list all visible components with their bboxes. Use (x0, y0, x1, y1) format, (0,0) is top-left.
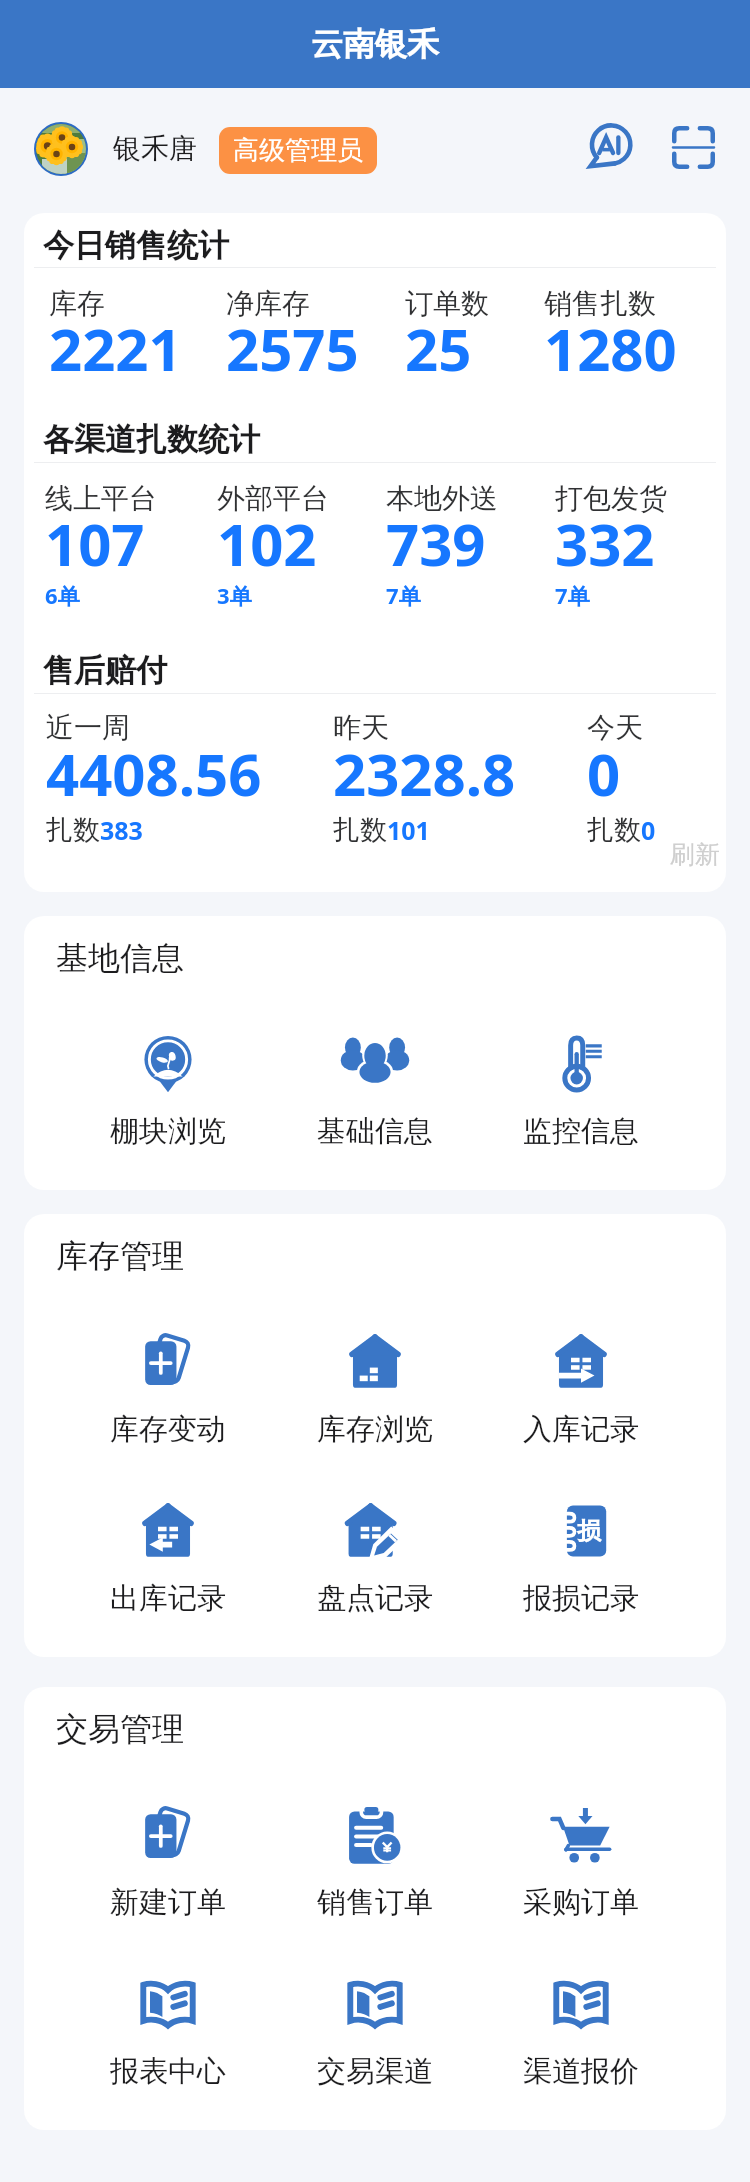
staticText: 739 (386, 504, 486, 583)
staticText: 库存 (49, 286, 105, 321)
staticText: 损 (577, 1516, 601, 1546)
staticText: 线上平台 (45, 481, 157, 516)
staticText: 基地信息 (56, 938, 184, 978)
staticText: 4408.56 (46, 734, 262, 813)
button[interactable]: 高级管理员 (219, 127, 377, 174)
staticText: 今天 (587, 710, 643, 745)
button[interactable]: AI assistant (583, 121, 635, 173)
staticText: 383 (100, 813, 143, 847)
staticText: 扎数 (46, 813, 100, 847)
staticText: 2221 (49, 309, 182, 388)
staticText: 扎数 (587, 813, 641, 847)
staticText: 净库存 (226, 286, 310, 321)
staticText: 订单数 (405, 286, 489, 321)
staticText: 6单 (45, 580, 80, 610)
staticText: 外部平台 (217, 481, 329, 516)
staticText: 交易管理 (56, 1709, 184, 1749)
button[interactable]: 刷新 (664, 833, 726, 876)
button[interactable]: 损 (511, 1495, 651, 1625)
staticText: 102 (217, 504, 317, 583)
staticText: 昨天 (333, 710, 389, 745)
staticText: 高级管理员 (233, 134, 363, 167)
staticText: 0 (587, 734, 621, 813)
staticText: 刷新 (670, 839, 720, 870)
staticText: 报损记录 (523, 1580, 639, 1617)
button[interactable]: 销售订单 (305, 1799, 445, 1929)
staticText: 7单 (555, 580, 590, 610)
staticText: 报表中心 (110, 2053, 226, 2090)
staticText: 扎数 (333, 813, 387, 847)
staticText: 2328.8 (333, 734, 516, 813)
staticText: 盘点记录 (317, 1580, 433, 1617)
staticText: 2575 (226, 309, 359, 388)
button[interactable]: 新建订单 (98, 1799, 238, 1929)
staticText: 库存浏览 (317, 1411, 433, 1448)
button[interactable]: 棚块浏览 (98, 1028, 238, 1158)
button[interactable]: Profile photo (34, 122, 88, 176)
staticText: 7单 (386, 580, 421, 610)
staticText: 销售订单 (317, 1884, 433, 1921)
staticText: 银禾唐 (113, 131, 197, 166)
button[interactable]: Scan QR code (669, 123, 717, 171)
staticText: 3单 (217, 580, 252, 610)
button[interactable]: 出库记录 (98, 1495, 238, 1625)
staticText: 云南银禾 (311, 24, 439, 64)
staticText: 棚块浏览 (110, 1113, 226, 1150)
staticText: 库存管理 (56, 1236, 184, 1276)
staticText: 打包发货 (555, 481, 667, 516)
staticText: 101 (387, 813, 430, 847)
button[interactable]: 库存浏览 (305, 1326, 445, 1456)
staticText: 销售扎数 (544, 286, 656, 321)
staticText: 库存变动 (110, 1411, 226, 1448)
staticText: 售后赔付 (43, 651, 167, 690)
button[interactable]: 基础信息 (305, 1028, 445, 1158)
staticText: 入库记录 (523, 1411, 639, 1448)
button[interactable]: 入库记录 (511, 1326, 651, 1456)
staticText: 今日销售统计 (43, 226, 229, 265)
staticText: 新建订单 (110, 1884, 226, 1921)
staticText: 渠道报价 (523, 2053, 639, 2090)
button[interactable]: 监控信息 (511, 1028, 651, 1158)
staticText: 近一周 (46, 710, 130, 745)
staticText: 采购订单 (523, 1884, 639, 1921)
staticText: 监控信息 (523, 1113, 639, 1150)
button[interactable]: 库存变动 (98, 1326, 238, 1456)
staticText: 出库记录 (110, 1580, 226, 1617)
staticText: 107 (45, 504, 145, 583)
button[interactable]: 报表中心 (98, 1968, 238, 2098)
staticText: 交易渠道 (317, 2053, 433, 2090)
staticText: 1280 (544, 309, 677, 388)
staticText: 本地外送 (386, 481, 498, 516)
staticText: 各渠道扎数统计 (43, 420, 260, 459)
button[interactable]: 采购订单 (511, 1799, 651, 1929)
button[interactable]: 盘点记录 (305, 1495, 445, 1625)
staticText: 332 (555, 504, 655, 583)
staticText: 0 (641, 813, 656, 847)
button[interactable]: 交易渠道 (305, 1968, 445, 2098)
staticText: 基础信息 (317, 1113, 433, 1150)
button[interactable]: 渠道报价 (511, 1968, 651, 2098)
staticText: 25 (405, 309, 472, 388)
